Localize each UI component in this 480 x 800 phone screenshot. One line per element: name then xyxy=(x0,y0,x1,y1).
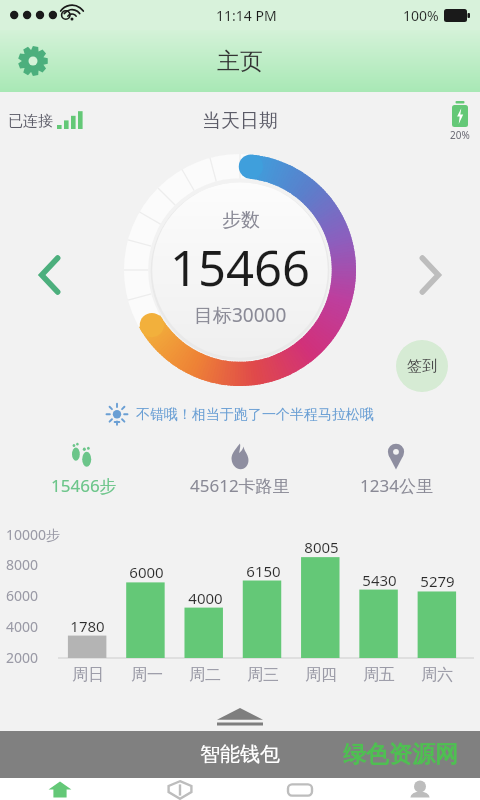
button[interactable]: 45612卡路里 xyxy=(162,430,318,508)
staticText: 8000 xyxy=(6,555,39,574)
staticText: 目标30000 xyxy=(194,302,287,328)
button[interactable]: 1234公里 xyxy=(318,430,474,508)
staticText: 已连接 xyxy=(8,112,53,131)
button[interactable]: 智能钱包 xyxy=(0,731,480,778)
staticText: 签到 xyxy=(407,357,437,376)
staticText: 6150 xyxy=(246,561,281,581)
staticText: 周三 xyxy=(247,665,279,685)
staticText: 周五 xyxy=(363,665,395,685)
staticText: 11:14 PM xyxy=(216,6,277,25)
button[interactable]: Settings xyxy=(10,38,56,84)
button[interactable]: 15466步 xyxy=(6,430,162,508)
staticText: 4000 xyxy=(188,588,223,608)
staticText: 100% xyxy=(403,6,439,25)
staticText: 主页 xyxy=(217,47,263,76)
staticText: 15466步 xyxy=(51,474,117,497)
staticText: 当天日期 xyxy=(202,109,278,133)
staticText: 4000 xyxy=(6,617,39,636)
staticText: 周日 xyxy=(72,665,104,685)
staticText: 10000步 xyxy=(6,525,61,544)
staticText: 1780 xyxy=(70,616,105,636)
staticText: 6000 xyxy=(129,562,164,582)
staticText: 不错哦！相当于跑了一个半程马拉松哦 xyxy=(136,406,374,424)
staticText: 5430 xyxy=(362,570,397,590)
staticText: 5279 xyxy=(420,571,455,591)
button[interactable]: Previous day xyxy=(28,253,72,297)
staticText: 45612卡路里 xyxy=(190,474,290,497)
staticText: 1234公里 xyxy=(360,474,433,497)
staticText: 8005 xyxy=(304,537,339,557)
staticText: 15466 xyxy=(170,234,311,301)
button[interactable]: Profile xyxy=(360,778,480,800)
staticText: 周一 xyxy=(131,665,163,685)
staticText: 周四 xyxy=(305,665,337,685)
button[interactable]: Collapse xyxy=(0,703,480,731)
button[interactable]: 签到 xyxy=(396,340,448,392)
staticText: 6000 xyxy=(6,586,39,605)
staticText: 绿色资源网 xyxy=(343,740,458,769)
staticText: 周二 xyxy=(189,665,221,685)
staticText: 2000 xyxy=(6,648,39,667)
staticText: 周六 xyxy=(421,665,453,685)
staticText: 步数 xyxy=(222,208,260,232)
button[interactable]: Home xyxy=(0,778,120,800)
button[interactable]: Cards xyxy=(240,778,360,800)
staticText: 智能钱包 xyxy=(200,742,280,767)
button[interactable]: Devices xyxy=(120,778,240,800)
staticText: 20% xyxy=(450,128,470,142)
button[interactable]: Next day xyxy=(408,253,452,297)
